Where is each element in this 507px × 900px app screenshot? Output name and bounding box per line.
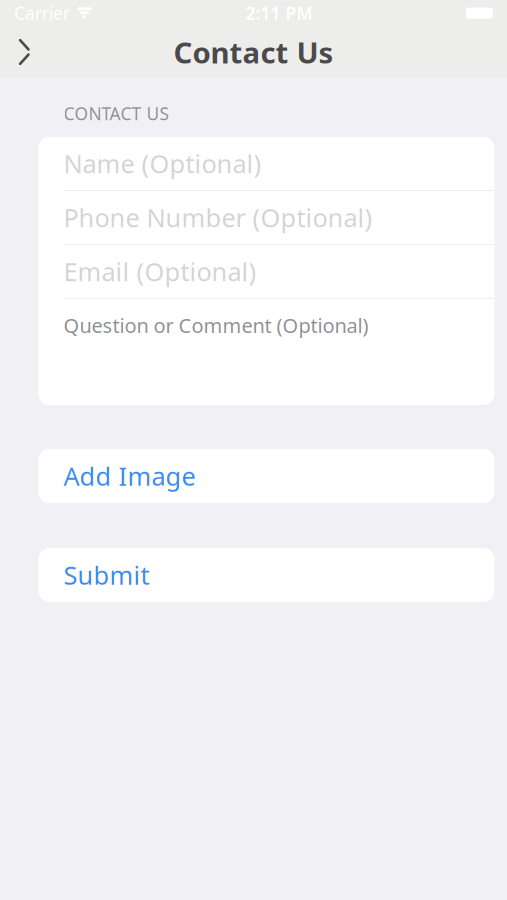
button[interactable]: Phone Number (Optional): [38, 191, 494, 244]
button[interactable]: Name (Optional): [38, 137, 494, 190]
button[interactable]: Add Image: [38, 449, 494, 503]
staticText: Carrier: [14, 1, 70, 24]
button[interactable]: Question or Comment (Optional): [38, 299, 494, 405]
staticText: Add Image: [63, 459, 195, 493]
button[interactable]: Email (Optional): [38, 245, 494, 298]
button[interactable]: Submit: [38, 548, 494, 602]
staticText: Contact Us: [173, 32, 333, 71]
staticText: Submit: [63, 558, 149, 592]
staticText: Email (Optional): [63, 255, 256, 288]
staticText: CONTACT US: [63, 102, 169, 125]
button[interactable]: Back: [0, 26, 48, 78]
staticText: Name (Optional): [63, 147, 261, 180]
staticText: Phone Number (Optional): [63, 201, 372, 234]
staticText: 2:11 PM: [245, 1, 312, 24]
staticText: Question or Comment (Optional): [63, 312, 368, 339]
